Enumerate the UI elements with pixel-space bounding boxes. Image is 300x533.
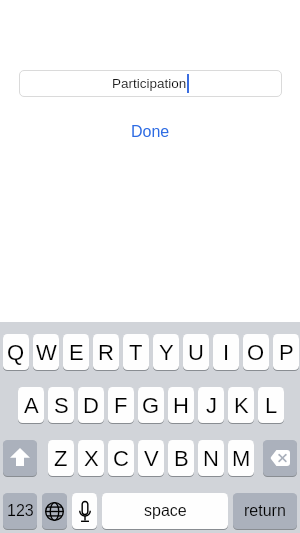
staticText: S <box>54 393 69 418</box>
staticText: space <box>144 502 187 520</box>
staticText: J <box>206 393 217 418</box>
staticText: T <box>129 340 143 365</box>
staticText: X <box>84 446 99 471</box>
staticText: F <box>114 393 128 418</box>
staticText: O <box>247 340 265 365</box>
staticText: P <box>279 340 294 365</box>
staticText: I <box>223 340 230 365</box>
staticText: Done <box>131 123 170 141</box>
staticText: V <box>144 446 159 471</box>
staticText: H <box>173 393 189 418</box>
staticText: C <box>113 446 129 471</box>
staticText: return <box>244 502 286 520</box>
staticText: D <box>83 393 99 418</box>
staticText: E <box>69 340 84 365</box>
staticText: R <box>98 340 114 365</box>
staticText: Participation <box>112 76 187 91</box>
staticText: N <box>203 446 219 471</box>
staticText: U <box>188 340 204 365</box>
staticText: B <box>174 446 189 471</box>
staticText: K <box>234 393 249 418</box>
staticText: Q <box>7 340 25 365</box>
staticText: Z <box>54 446 68 471</box>
staticText: M <box>232 446 251 471</box>
staticText: G <box>142 393 160 418</box>
staticText: Y <box>159 340 174 365</box>
staticText: A <box>24 393 39 418</box>
staticText: 123 <box>7 502 34 520</box>
staticText: W <box>36 340 57 365</box>
staticText: L <box>265 393 278 418</box>
